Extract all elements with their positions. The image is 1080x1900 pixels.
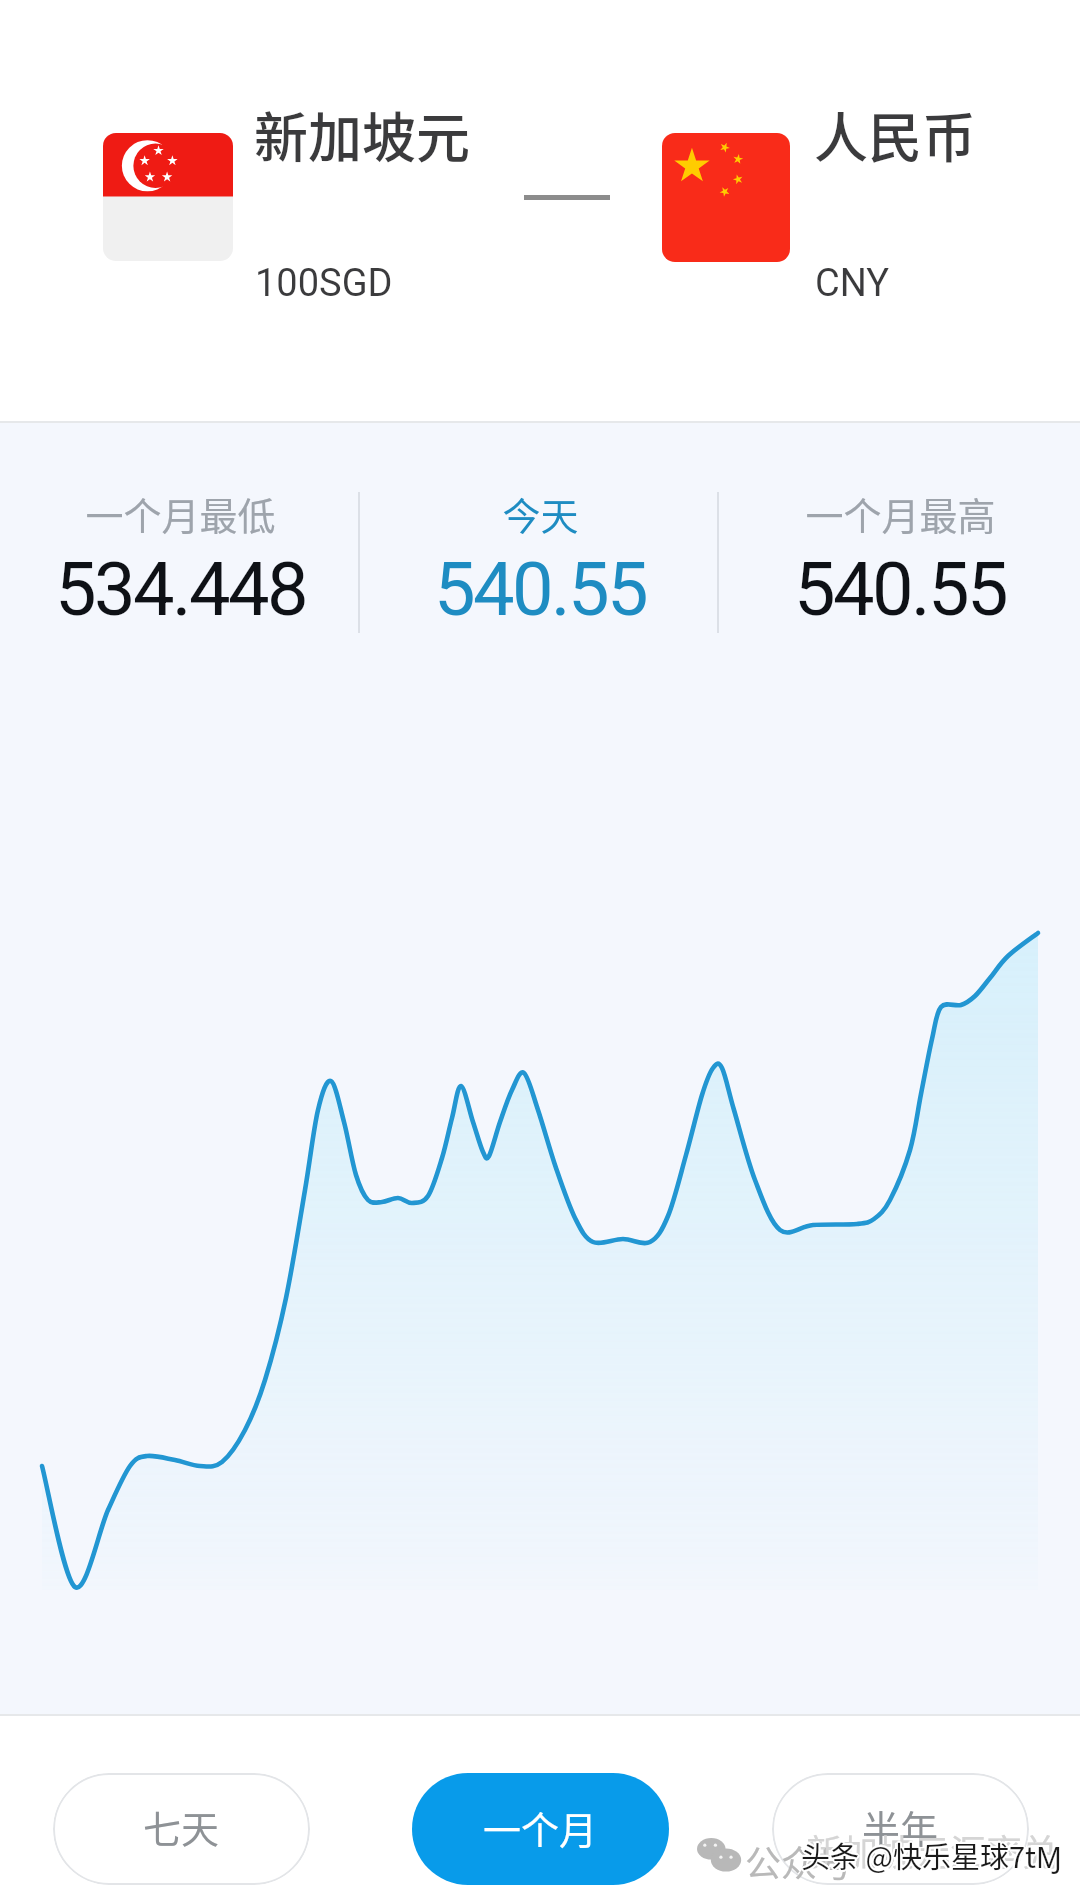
staticText: 公众号	[745, 1835, 854, 1887]
staticText: 头条 @快乐星球7tⱮ	[803, 1834, 1064, 1876]
staticText: 头条 @快乐星球7tⱮ	[802, 1835, 1063, 1877]
staticText: 头条 @快乐星球7tⱮ	[802, 1833, 1063, 1875]
button[interactable]: 七天	[53, 1773, 310, 1885]
staticText: 一个月最高	[805, 486, 996, 541]
staticText: 一个月最低	[85, 486, 276, 541]
button[interactable]: Select source currency 100 SGD	[95, 88, 495, 313]
staticText: 新加坡元汇率兑	[806, 1824, 1059, 1876]
staticText: 头条 @快乐星球7tⱮ	[799, 1834, 1060, 1876]
staticText: 头条 @快乐星球7tⱮ	[802, 1834, 1063, 1876]
staticText: 头条 @快乐星球7tⱮ	[801, 1833, 1062, 1875]
staticText: 新加坡元	[254, 95, 470, 173]
button[interactable]: Select target currency CNY	[654, 88, 984, 313]
staticText: 头条 @快乐星球7tⱮ	[801, 1836, 1062, 1878]
staticText: 540.55	[794, 546, 1006, 633]
staticText: 一个月	[483, 1800, 598, 1855]
staticText: 540.55	[434, 546, 646, 633]
button[interactable]: 一个月	[412, 1773, 669, 1885]
staticText: 头条 @快乐星球7tⱮ	[800, 1835, 1061, 1877]
staticText: 534.448	[55, 546, 306, 633]
staticText: 人民币	[814, 95, 976, 173]
staticText: 头条 @快乐星球7tⱮ	[800, 1834, 1061, 1876]
staticText: CNY	[815, 261, 890, 306]
staticText: 头条 @快乐星球7tⱮ	[800, 1833, 1061, 1875]
staticText: 头条 @快乐星球7tⱮ	[801, 1835, 1062, 1877]
staticText: 半年	[862, 1799, 939, 1854]
staticText: 头条 @快乐星球7tⱮ	[801, 1834, 1062, 1876]
staticText: 今天	[502, 486, 579, 541]
staticText: 头条 @快乐星球7tⱮ	[801, 1832, 1062, 1874]
staticText: 100SGD	[255, 261, 393, 306]
button[interactable]: 半年	[772, 1773, 1029, 1885]
staticText: 七天	[143, 1799, 220, 1854]
